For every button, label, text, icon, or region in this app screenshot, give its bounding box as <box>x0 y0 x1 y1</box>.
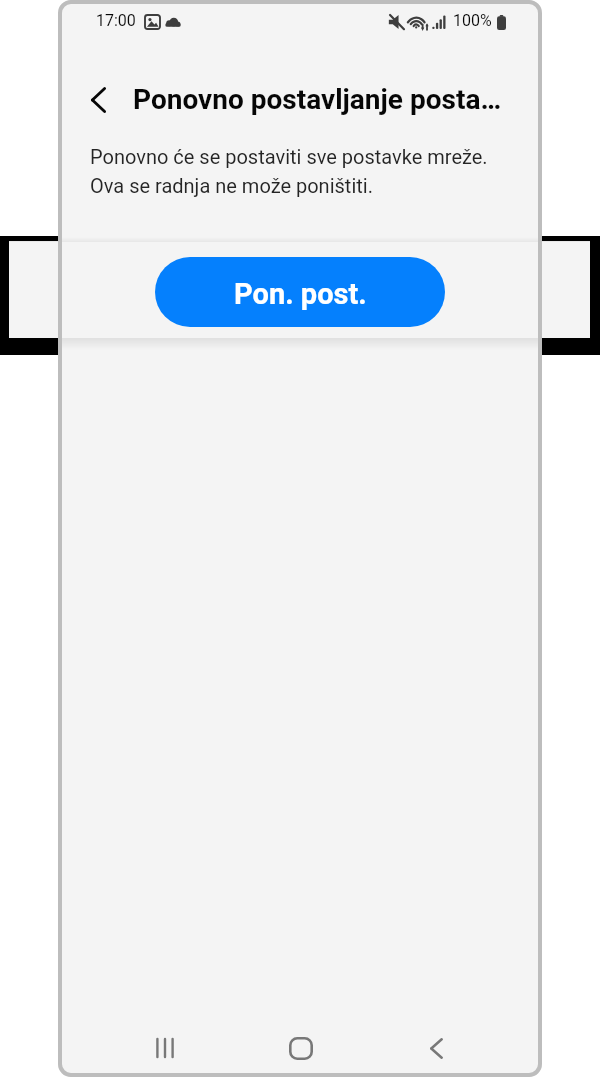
button[interactable]: Back <box>412 1024 460 1072</box>
staticText: Pon. post. <box>234 277 367 311</box>
staticText: Ponovno postavljanje posta… <box>133 83 502 116</box>
staticText: Ponovno će se postaviti sve postavke mre… <box>90 145 488 198</box>
button[interactable]: Pon. post. <box>155 257 445 327</box>
staticText: 17:00 <box>96 11 136 30</box>
button[interactable]: Home <box>277 1024 325 1072</box>
button[interactable]: Recent apps <box>141 1024 189 1072</box>
button[interactable]: Back <box>79 80 118 119</box>
staticText: 100% <box>453 11 492 30</box>
